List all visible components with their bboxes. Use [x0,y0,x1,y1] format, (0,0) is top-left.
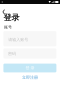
staticText: 密码 [8,51,16,56]
staticText: 登 录 [25,65,34,70]
staticText: 账号 [4,25,12,30]
staticText: 登录 [3,13,19,22]
button[interactable]: 登 录 [3,64,56,72]
staticText: 立即注册 [22,75,38,80]
staticText: 请输入账号 [8,37,28,42]
button[interactable]: 立即注册 [0,75,60,80]
button[interactable]: Back [0,4,9,13]
